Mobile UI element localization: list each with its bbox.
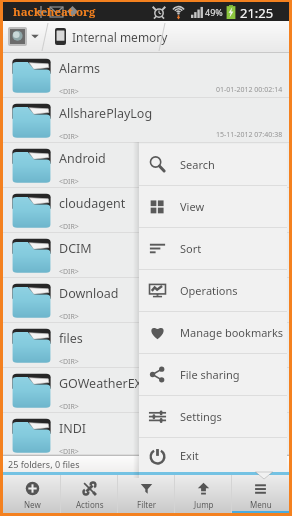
button[interactable]: File sharing [139, 354, 287, 395]
staticText: <DIR> [59, 267, 79, 277]
button[interactable]: More options [30, 31, 40, 41]
staticText: INDI [59, 420, 87, 437]
button[interactable]: AllsharePlayLog [3, 98, 289, 143]
button[interactable]: Sort [139, 228, 287, 269]
staticText: Menu [250, 499, 272, 510]
button[interactable]: Jump [175, 475, 232, 513]
staticText: <DIR> [59, 357, 79, 367]
button[interactable]: Manage bookmarks [139, 312, 287, 353]
staticText: File sharing [180, 367, 240, 382]
staticText: Download [59, 285, 119, 302]
button[interactable]: cloudagent [3, 188, 289, 233]
staticText: <DIR> [59, 312, 79, 322]
button[interactable]: Operations [139, 270, 287, 311]
staticText: Internal memory [72, 29, 168, 45]
staticText: AllsharePlayLog [59, 105, 153, 122]
button[interactable]: New [3, 475, 61, 513]
staticText: Operations [180, 283, 238, 298]
staticText: <DIR> [59, 177, 79, 187]
staticText: 01-01-2012 00:02:14 [216, 265, 283, 275]
staticText: cloudagent [59, 195, 126, 212]
staticText: Exit [180, 448, 199, 463]
staticText: 15-11-2012 07:40:38 [216, 130, 283, 140]
staticText: 25 folders, 0 files [8, 458, 80, 470]
button[interactable]: Filter [118, 475, 175, 513]
button[interactable]: Download [3, 278, 289, 323]
staticText: <DIR> [59, 447, 79, 457]
staticText: 21:25 [240, 4, 274, 22]
staticText: 15-11-2012 07:40:57 [216, 220, 283, 230]
button[interactable]: App icon [8, 27, 27, 46]
button[interactable]: Android [3, 143, 289, 188]
staticText: GOWeatherEX [59, 375, 142, 392]
button[interactable]: files [3, 323, 289, 368]
staticText: hackcheat.org [13, 4, 96, 20]
staticText: New [24, 499, 41, 510]
button[interactable]: Menu [232, 475, 289, 513]
staticText: Search [180, 157, 215, 172]
staticText: files [59, 330, 83, 347]
staticText: View [180, 199, 205, 214]
button[interactable]: INDI [3, 413, 289, 455]
staticText: Sort [180, 241, 202, 256]
button[interactable]: Search [139, 144, 287, 185]
staticText: Filter [137, 499, 156, 510]
staticText: 01-01-2012 00:02:14 [216, 310, 283, 320]
button[interactable]: Actions [61, 475, 118, 513]
staticText: Manage bookmarks [180, 325, 284, 340]
staticText: <DIR> [59, 402, 79, 412]
button[interactable]: Alarms [3, 53, 289, 98]
staticText: <DIR> [59, 87, 79, 97]
button[interactable]: GOWeatherEX [3, 368, 289, 413]
staticText: Settings [180, 409, 222, 424]
button[interactable]: Exit [139, 438, 287, 472]
staticText: Android [59, 150, 106, 167]
staticText: 01-01-2012 00:02:14 [216, 85, 283, 95]
staticText: 49% [205, 6, 223, 18]
staticText: <DIR> [59, 222, 79, 232]
staticText: Alarms [59, 60, 101, 77]
button[interactable]: View [139, 186, 287, 227]
button[interactable]: DCIM [3, 233, 289, 278]
staticText: Actions [76, 499, 104, 510]
button[interactable]: Settings [139, 396, 287, 437]
staticText: DCIM [59, 240, 92, 257]
staticText: Jump [194, 499, 214, 510]
staticText: <DIR> [59, 132, 79, 142]
